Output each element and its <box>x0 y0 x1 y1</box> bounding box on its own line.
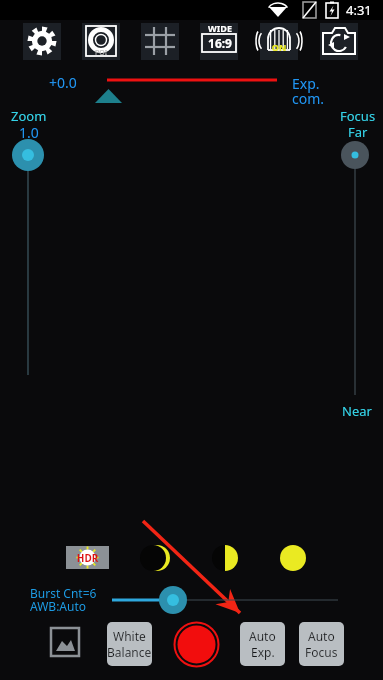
button[interactable]: Exposure preset 2 <box>211 544 239 572</box>
staticText: AWB:Auto <box>30 598 87 614</box>
staticText: Auto <box>308 628 335 644</box>
staticText: com. <box>292 89 325 108</box>
staticText: ON <box>269 41 289 53</box>
staticText: Focus <box>305 644 338 660</box>
button[interactable]: Exposure preset 3 <box>279 544 307 572</box>
button[interactable]: Focus slider <box>339 138 372 400</box>
staticText: Exp. <box>292 74 320 93</box>
staticText: Near <box>342 402 372 420</box>
staticText: Focus <box>340 107 376 125</box>
button[interactable]: Gallery <box>51 628 79 656</box>
staticText: POI <box>91 48 111 58</box>
button[interactable]: POI focus mode <box>80 20 122 62</box>
button[interactable]: Switch camera <box>318 20 360 62</box>
button[interactable]: HDR <box>66 546 109 569</box>
staticText: Balance <box>107 644 152 660</box>
button[interactable]: Aspect ratio 16:9 <box>198 20 240 62</box>
button[interactable]: Burst count slider <box>105 588 340 612</box>
button[interactable]: Auto <box>240 622 285 666</box>
staticText: 1.0 <box>19 123 39 142</box>
staticText: 16:9 <box>203 35 237 51</box>
button[interactable]: Shutter <box>174 622 219 667</box>
button[interactable]: Auto <box>299 622 344 666</box>
staticText: Zoom <box>11 107 47 125</box>
staticText: 4:31 <box>346 1 372 19</box>
button[interactable]: White <box>107 622 152 666</box>
button[interactable]: Exposure preset 1 <box>143 544 171 572</box>
button[interactable]: Zoom slider <box>12 138 45 378</box>
button[interactable]: Sound on <box>258 20 300 62</box>
staticText: Far <box>348 123 368 141</box>
staticText: HDR <box>74 551 101 565</box>
staticText: White <box>113 628 146 644</box>
button[interactable]: Exposure compensation slider <box>90 70 290 106</box>
staticText: Burst Cnt=6 <box>30 585 97 601</box>
staticText: Exp. <box>251 644 275 660</box>
staticText: Auto <box>249 628 276 644</box>
button[interactable]: Grid <box>139 20 181 62</box>
staticText: WIDE <box>203 22 237 34</box>
button[interactable]: Settings <box>21 20 63 62</box>
staticText: +0.0 <box>49 73 77 92</box>
